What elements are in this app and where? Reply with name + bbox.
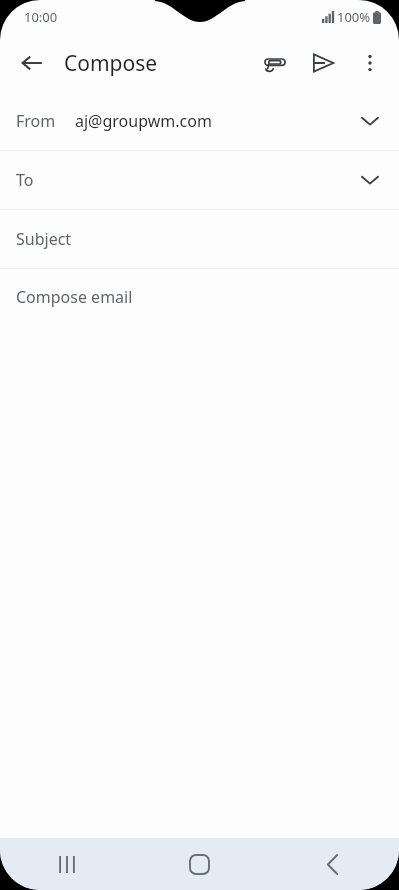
- button[interactable]: Compose email: [0, 269, 399, 325]
- button[interactable]: Home: [133, 838, 266, 890]
- button[interactable]: Expand: [352, 162, 388, 198]
- button[interactable]: Subject: [0, 210, 399, 268]
- staticText: aj@groupwm.com: [75, 110, 212, 132]
- button[interactable]: Send: [299, 39, 347, 87]
- staticText: 100%: [337, 8, 371, 26]
- staticText: Subject: [16, 228, 72, 250]
- button[interactable]: Expand: [352, 103, 388, 139]
- staticText: 10:00: [24, 8, 58, 26]
- button[interactable]: Attach file: [251, 39, 299, 87]
- button[interactable]: More options: [347, 40, 393, 86]
- button[interactable]: From: [0, 92, 399, 150]
- button[interactable]: Recent apps: [0, 838, 133, 890]
- button[interactable]: Back: [266, 838, 399, 890]
- button[interactable]: To: [0, 151, 399, 209]
- staticText: From: [16, 110, 56, 132]
- button[interactable]: Back: [8, 39, 56, 87]
- staticText: Compose: [64, 49, 158, 78]
- staticText: Compose email: [16, 286, 133, 308]
- staticText: To: [16, 169, 34, 191]
